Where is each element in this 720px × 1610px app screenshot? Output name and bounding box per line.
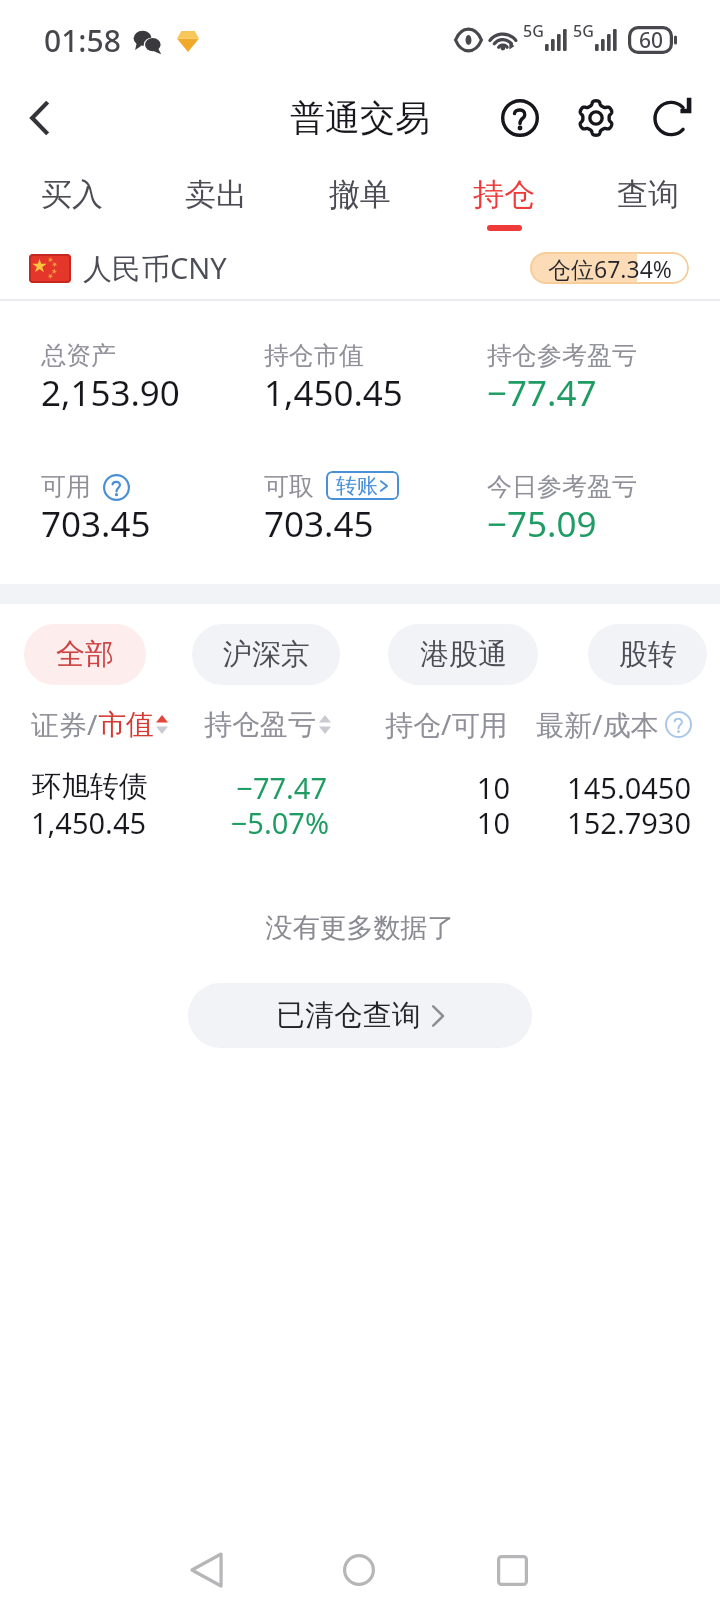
staticText: 60 <box>639 26 664 54</box>
staticText: 持仓 <box>473 175 535 214</box>
button[interactable]: 最新/成本 <box>536 705 692 743</box>
button[interactable]: Help <box>492 90 548 146</box>
staticText: 市值 <box>98 707 154 742</box>
button[interactable]: Recents <box>472 1530 552 1610</box>
staticText: 5G <box>523 20 544 42</box>
staticText: 人民币CNY <box>83 248 227 288</box>
staticText: 703.45 <box>264 500 374 548</box>
button[interactable]: 持仓盈亏 <box>204 705 331 743</box>
staticText: 2,153.90 <box>41 369 180 417</box>
staticText: 1,450.45 <box>31 803 147 842</box>
staticText: 5G <box>573 20 594 42</box>
staticText: 10 <box>210 768 510 807</box>
staticText: −77.47 <box>27 768 327 807</box>
staticText: 1,450.45 <box>264 369 403 417</box>
staticText: 可用 <box>41 471 91 502</box>
button[interactable]: 查询 <box>576 158 720 238</box>
staticText: 卖出 <box>185 175 247 214</box>
button[interactable]: 转账 <box>326 471 399 500</box>
staticText: 买入 <box>41 175 103 214</box>
button[interactable]: 全部 <box>24 624 146 685</box>
staticText: −5.07% <box>29 803 329 842</box>
staticText: 仓位67.34% <box>548 253 672 284</box>
staticText: 最新/成本 <box>536 705 659 743</box>
staticText: 沪深京 <box>223 636 310 673</box>
button[interactable]: Settings <box>568 90 624 146</box>
staticText: 持仓/可用 <box>385 705 508 743</box>
staticText: 145.0450 <box>391 768 691 807</box>
button[interactable]: Back <box>11 90 67 146</box>
button[interactable]: 已清仓查询 <box>188 983 532 1048</box>
staticText: −77.47 <box>487 369 597 417</box>
staticText: 已清仓查询 <box>276 997 421 1034</box>
staticText: 10 <box>210 803 510 842</box>
staticText: 查询 <box>617 175 679 214</box>
button[interactable]: 撤单 <box>288 158 432 238</box>
staticText: 今日参考盈亏 <box>487 471 637 502</box>
staticText: 703.45 <box>41 500 151 548</box>
staticText: 证券/ <box>31 705 98 743</box>
button[interactable]: 股转 <box>588 624 707 685</box>
button[interactable]: Refresh <box>645 90 701 146</box>
button[interactable]: 沪深京 <box>192 624 340 685</box>
button[interactable]: 证券/ <box>31 705 168 743</box>
staticText: 可取 <box>264 471 314 502</box>
staticText: 全部 <box>56 636 114 673</box>
staticText: 环旭转债 <box>32 768 148 805</box>
button[interactable]: 卖出 <box>144 158 288 238</box>
staticText: 持仓市值 <box>264 340 364 371</box>
staticText: 港股通 <box>420 636 507 673</box>
staticText: 总资产 <box>41 340 116 371</box>
button[interactable]: 仓位67.34% <box>530 252 689 284</box>
button[interactable]: 买入 <box>0 158 144 238</box>
staticText: 普通交易 <box>290 96 430 140</box>
staticText: 持仓参考盈亏 <box>487 340 637 371</box>
staticText: 152.7930 <box>391 803 691 842</box>
button[interactable]: 环旭转债 <box>0 762 720 850</box>
staticText: 持仓盈亏 <box>204 707 316 742</box>
staticText: 01:58 <box>44 20 121 61</box>
button[interactable]: 持仓 <box>432 158 576 238</box>
button[interactable]: 港股通 <box>388 624 538 685</box>
button[interactable]: Home <box>319 1530 399 1610</box>
staticText: −75.09 <box>487 500 597 548</box>
staticText: 没有更多数据了 <box>0 911 720 945</box>
staticText: 撤单 <box>329 175 391 214</box>
staticText: 股转 <box>619 636 677 673</box>
button[interactable]: Back <box>166 1530 246 1610</box>
staticText: 转账 <box>336 473 378 499</box>
